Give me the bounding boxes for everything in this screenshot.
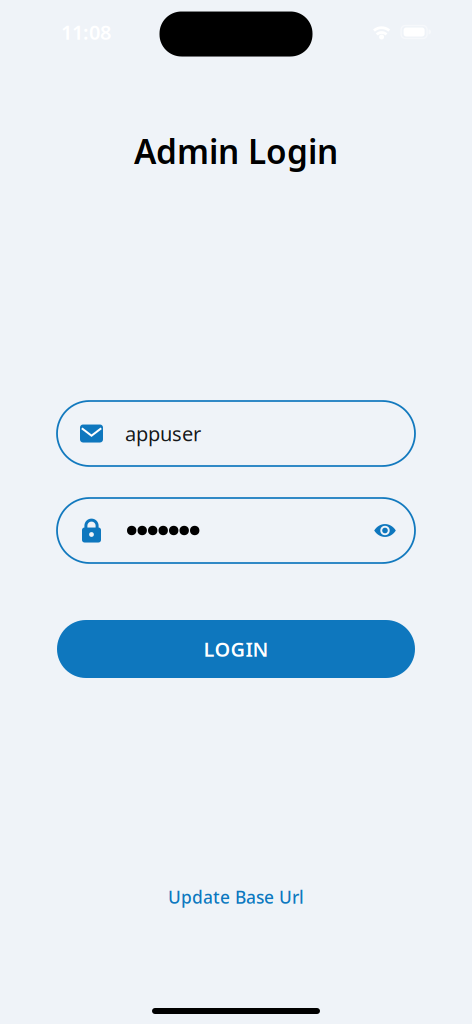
- button[interactable]: appuser: [57, 401, 415, 466]
- button[interactable]: Update Base Url: [136, 887, 336, 907]
- staticText: Update Base Url: [168, 885, 304, 908]
- button[interactable]: [57, 498, 415, 563]
- staticText: Admin Login: [134, 129, 338, 173]
- staticText: 11:08: [61, 19, 111, 45]
- staticText: LOGIN: [203, 636, 268, 662]
- button[interactable]: Show password: [363, 508, 407, 552]
- button[interactable]: LOGIN: [57, 620, 415, 678]
- staticText: appuser: [125, 420, 201, 447]
